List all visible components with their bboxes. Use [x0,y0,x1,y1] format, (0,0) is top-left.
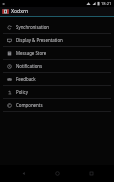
staticText: Xodxrn [11,8,29,15]
staticText: Components [16,102,43,108]
button[interactable]: Recent apps [81,165,101,182]
button[interactable]: Message Store [0,47,114,59]
button[interactable]: Notifications [0,60,114,72]
button[interactable]: App icon [0,7,114,16]
button[interactable]: Synchronisation [0,21,114,33]
staticText: Display & Presentation [16,37,63,43]
button[interactable]: Back [14,165,34,182]
other: App icon [2,8,9,15]
button[interactable]: Home [47,165,67,182]
staticText: Message Store [16,50,47,56]
staticText: Feedback [16,76,36,82]
button[interactable]: Display & Presentation [0,34,114,46]
staticText: Notifications [16,63,43,69]
button[interactable]: Policy [0,86,114,98]
staticText: Policy [16,89,28,95]
staticText: 18:21 [101,1,112,6]
staticText: Synchronisation [16,24,50,30]
button[interactable]: Components [0,99,114,111]
button[interactable]: Feedback [0,73,114,85]
